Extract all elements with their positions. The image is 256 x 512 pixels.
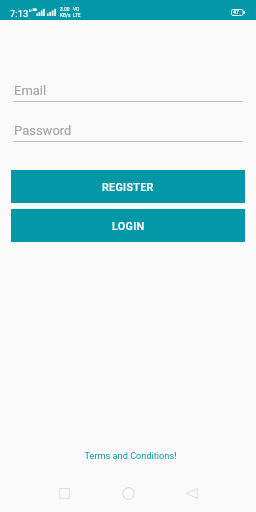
- staticText: KB/s: [60, 13, 71, 19]
- staticText: Terms and Conditions!: [84, 450, 177, 461]
- staticText: 3.00: [60, 7, 70, 13]
- staticText: 7:13: [10, 8, 29, 19]
- staticText: Email: [14, 83, 47, 98]
- button[interactable]: Back: [172, 475, 212, 511]
- staticText: 47: [233, 9, 239, 15]
- button[interactable]: Home: [108, 475, 148, 511]
- button[interactable]: Recents: [44, 475, 84, 511]
- staticText: LTE: [73, 13, 81, 19]
- button[interactable]: Terms and Conditions!: [84, 450, 177, 461]
- button[interactable]: REGISTER: [11, 170, 245, 203]
- staticText: REGISTER: [102, 181, 154, 194]
- button[interactable]: LOGIN: [11, 209, 245, 242]
- staticText: LOGIN: [112, 220, 145, 233]
- staticText: VO: [73, 7, 80, 13]
- staticText: Password: [14, 123, 72, 138]
